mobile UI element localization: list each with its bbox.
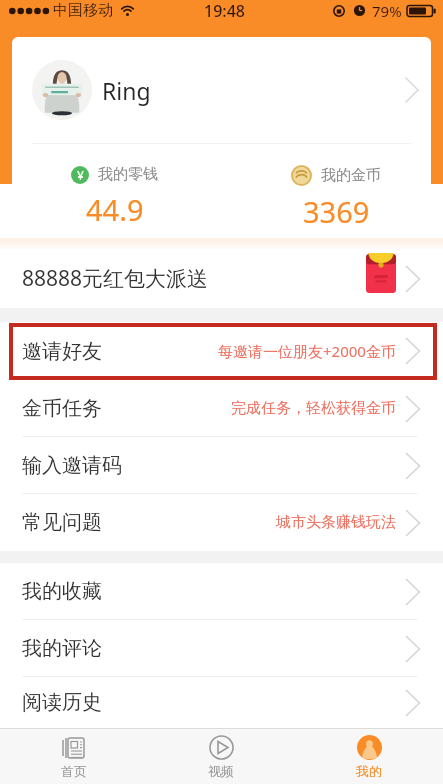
button[interactable]: 首页 <box>0 729 147 784</box>
staticText: Ring <box>102 75 151 106</box>
staticText: 输入邀请码 <box>22 453 122 478</box>
staticText: 首页 <box>61 763 87 779</box>
button[interactable]: 视频 <box>147 729 295 784</box>
staticText: 每邀请一位朋友+2000金币 <box>218 341 396 361</box>
button[interactable]: 常见问题 <box>0 494 443 551</box>
button[interactable]: 邀请好友 <box>0 322 443 380</box>
staticText: 79% <box>372 1 402 21</box>
staticText: 19:48 <box>204 0 245 21</box>
button[interactable]: 88888元红包大派送 <box>0 249 443 308</box>
button[interactable]: 输入邀请码 <box>0 437 443 494</box>
button[interactable]: 我的 <box>295 729 443 784</box>
staticText: ¥ <box>77 167 84 183</box>
staticText: 我的收藏 <box>22 579 102 604</box>
staticText: 邀请好友 <box>22 339 102 364</box>
staticText: 我的评论 <box>22 636 102 661</box>
button[interactable]: 我的金币 <box>291 165 381 231</box>
button[interactable]: 我的收藏 <box>0 563 443 620</box>
staticText: 阅读历史 <box>22 690 102 715</box>
staticText: 88888元红包大派送 <box>22 264 209 293</box>
button[interactable]: Ring <box>12 37 431 143</box>
staticText: 我的 <box>356 763 382 779</box>
staticText: 视频 <box>208 763 234 779</box>
staticText: 城市头条赚钱玩法 <box>276 513 396 532</box>
button[interactable]: 阅读历史 <box>0 677 443 728</box>
staticText: 金币任务 <box>22 396 102 421</box>
button[interactable]: 我的评论 <box>0 620 443 677</box>
staticText: 完成任务，轻松获得金币 <box>231 399 396 418</box>
staticText: 44.9 <box>86 190 144 229</box>
staticText: 中国移动 <box>53 1 113 20</box>
button[interactable]: ¥ <box>71 165 158 229</box>
button[interactable]: 金币任务 <box>0 380 443 437</box>
staticText: 我的零钱 <box>98 165 158 184</box>
staticText: 3369 <box>303 192 370 231</box>
staticText: 我的金币 <box>321 166 381 185</box>
staticText: 常见问题 <box>22 510 102 535</box>
